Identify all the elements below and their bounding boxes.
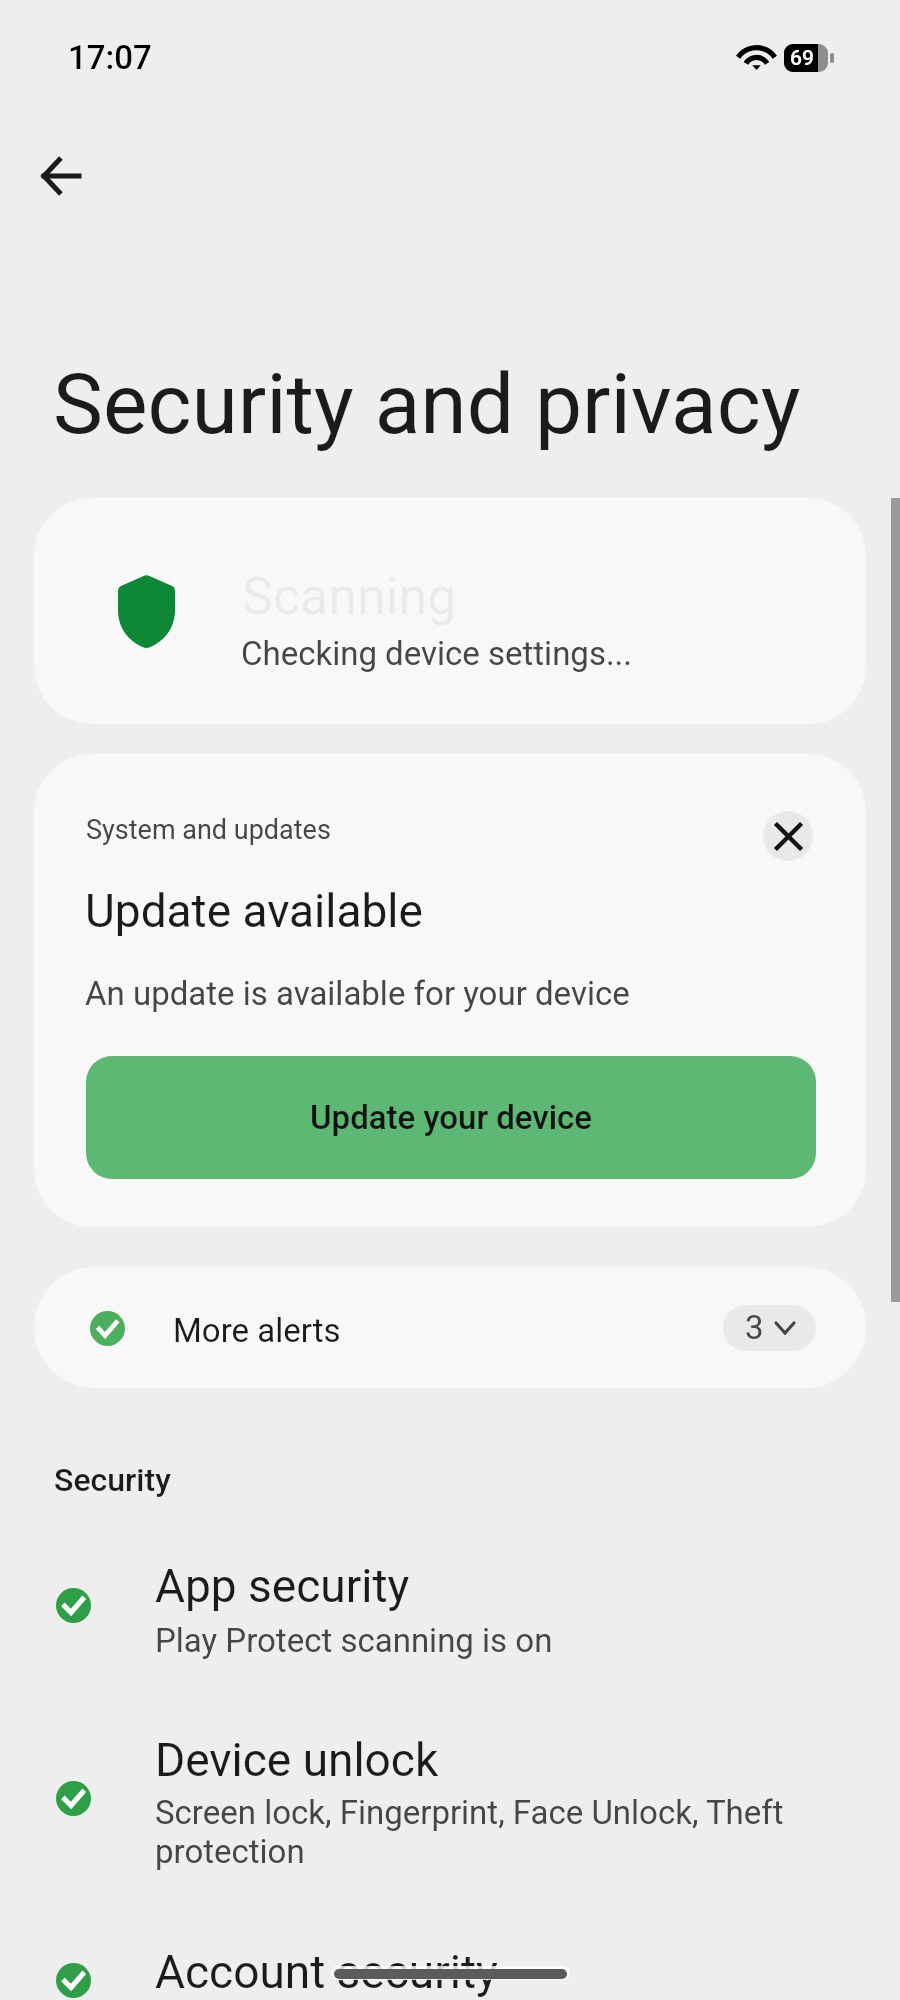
staticText: Security bbox=[54, 1461, 171, 1499]
button[interactable]: Account security bbox=[0, 1945, 900, 2000]
button[interactable]: Back bbox=[16, 131, 106, 221]
staticText: Checking device settings... bbox=[241, 634, 633, 673]
staticText: An update is available for your device bbox=[85, 974, 630, 1013]
button[interactable]: Scanning bbox=[34, 498, 866, 724]
staticText: 17:07 bbox=[68, 38, 152, 77]
button[interactable]: Update your device bbox=[86, 1056, 816, 1179]
staticText: More alerts bbox=[173, 1311, 341, 1350]
button[interactable]: 3 bbox=[723, 1305, 816, 1351]
staticText: 3 bbox=[745, 1308, 764, 1347]
staticText: protection bbox=[155, 1832, 305, 1871]
staticText: Screen lock, Fingerprint, Face Unlock, T… bbox=[155, 1793, 784, 1832]
staticText: Update your device bbox=[310, 1098, 592, 1137]
staticText: Device unlock bbox=[155, 1733, 439, 1787]
button[interactable]: More alerts bbox=[34, 1267, 866, 1388]
button[interactable]: Device unlock bbox=[0, 1733, 900, 1880]
staticText: 69 bbox=[790, 46, 814, 71]
staticText: Account security bbox=[155, 1945, 498, 1999]
staticText: App security bbox=[155, 1559, 410, 1613]
staticText: Update available bbox=[85, 884, 423, 938]
button[interactable]: Dismiss bbox=[763, 811, 813, 861]
button[interactable]: App security bbox=[0, 1559, 900, 1660]
staticText: Security and privacy bbox=[53, 355, 801, 453]
staticText: Scanning bbox=[242, 566, 457, 627]
staticText: Play Protect scanning is on bbox=[155, 1621, 553, 1660]
staticText: System and updates bbox=[86, 814, 331, 846]
